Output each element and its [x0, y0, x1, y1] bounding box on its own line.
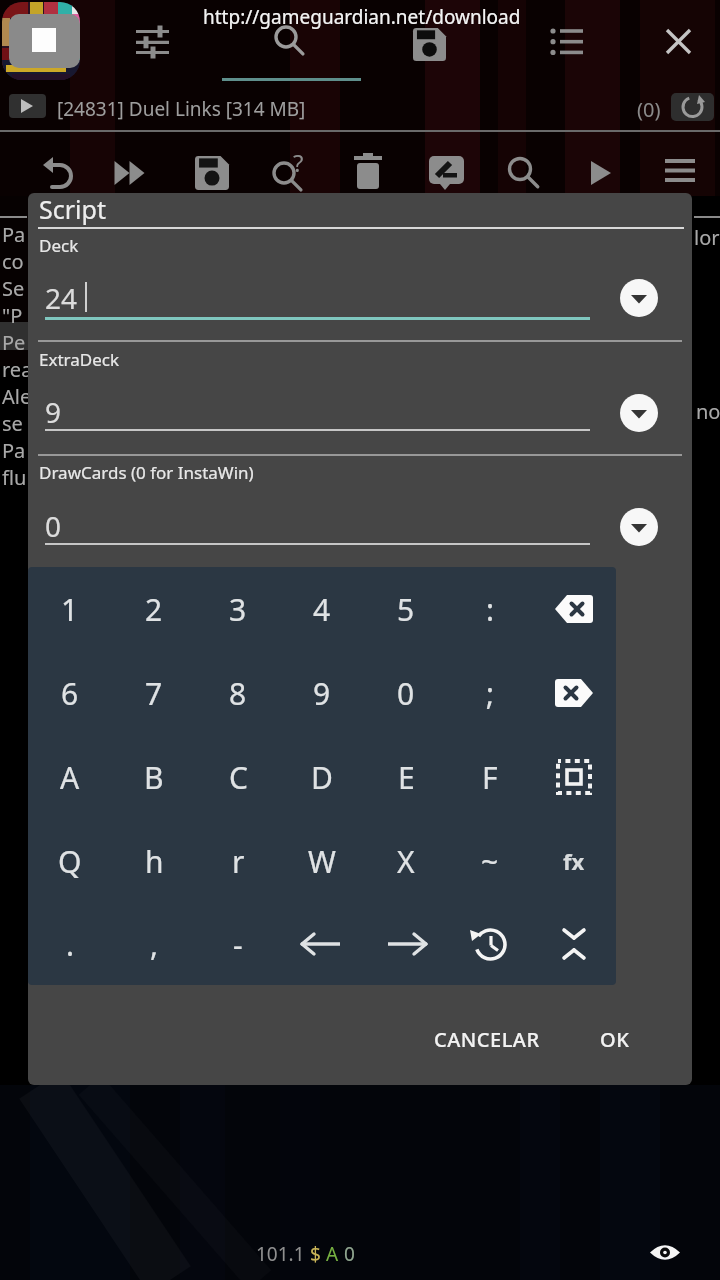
staticText: 101.1	[256, 1241, 305, 1267]
button[interactable]: .	[28, 903, 112, 985]
button[interactable]: 4	[280, 567, 364, 651]
button[interactable]: F	[448, 735, 532, 819]
button[interactable]: 2	[112, 567, 196, 651]
button[interactable]	[548, 24, 586, 60]
staticText: Script	[39, 193, 106, 226]
staticText: Pa	[2, 437, 26, 464]
staticText: r	[232, 841, 245, 882]
button[interactable]: C	[196, 735, 280, 819]
staticText: OK	[600, 1026, 630, 1053]
staticText: ;	[486, 673, 495, 714]
staticText: -	[233, 924, 243, 965]
staticText: Pa	[2, 221, 26, 248]
button[interactable]: fx	[532, 819, 616, 903]
button[interactable]: D	[280, 735, 364, 819]
staticText: http://gameguardian.net/download	[203, 4, 521, 30]
staticText: [24831] Duel Links [314 MB]	[57, 96, 306, 122]
button[interactable]	[532, 651, 616, 735]
button[interactable]: 0	[364, 651, 448, 735]
staticText: E	[398, 757, 415, 798]
staticText: 4	[313, 589, 331, 630]
button[interactable]	[502, 152, 544, 194]
staticText: fx	[563, 846, 585, 876]
button[interactable]: 9	[280, 651, 364, 735]
staticText: 8	[229, 673, 247, 714]
button[interactable]: h	[112, 819, 196, 903]
button[interactable]: 7	[112, 651, 196, 735]
button[interactable]	[532, 735, 616, 819]
staticText: Pe	[2, 329, 26, 356]
button[interactable]: 3	[196, 567, 280, 651]
button[interactable]	[671, 93, 714, 121]
staticText: 0	[45, 507, 62, 545]
button[interactable]: B	[112, 735, 196, 819]
staticText: 2	[145, 589, 163, 630]
staticText: Deck	[39, 234, 79, 257]
staticText: X	[397, 841, 415, 882]
button[interactable]: ;	[448, 651, 532, 735]
button[interactable]: 5	[364, 567, 448, 651]
button[interactable]	[36, 152, 78, 194]
button[interactable]: E	[364, 735, 448, 819]
staticText: ExtraDeck	[39, 348, 120, 371]
button[interactable]	[660, 156, 700, 192]
button[interactable]	[112, 156, 156, 190]
button[interactable]	[649, 1241, 681, 1264]
button[interactable]	[584, 154, 620, 192]
staticText: (0)	[637, 96, 661, 123]
button[interactable]	[364, 903, 448, 985]
button[interactable]: 1	[28, 567, 112, 651]
staticText: 24	[45, 279, 78, 317]
staticText: DrawCards (0 for InstaWin)	[39, 461, 254, 484]
button[interactable]: ~	[448, 819, 532, 903]
button[interactable]	[411, 26, 447, 62]
staticText: A	[326, 1241, 339, 1267]
button[interactable]	[9, 94, 46, 118]
button[interactable]: r	[196, 819, 280, 903]
button[interactable]: 8	[196, 651, 280, 735]
button[interactable]	[620, 279, 658, 317]
button[interactable]	[2, 2, 80, 80]
button[interactable]: -	[196, 903, 280, 985]
staticText: 7	[145, 673, 163, 714]
staticText: .	[66, 924, 75, 965]
staticText: 5	[397, 589, 415, 630]
staticText: $	[310, 1241, 321, 1267]
button[interactable]: OK	[575, 1013, 655, 1065]
staticText: ~	[481, 841, 499, 882]
staticText: co	[2, 248, 24, 275]
staticText: 6	[61, 673, 79, 714]
button[interactable]	[662, 25, 695, 58]
staticText: h	[145, 841, 164, 882]
button[interactable]	[350, 152, 386, 194]
staticText: rea	[2, 356, 33, 383]
staticText: :	[486, 589, 495, 630]
button[interactable]: X	[364, 819, 448, 903]
button[interactable]: :	[448, 567, 532, 651]
button[interactable]	[620, 508, 658, 546]
button[interactable]	[280, 903, 364, 985]
staticText: 0	[397, 673, 415, 714]
button[interactable]	[448, 903, 532, 985]
staticText: 9	[313, 673, 331, 714]
button[interactable]: ,	[112, 903, 196, 985]
button[interactable]: 6	[28, 651, 112, 735]
button[interactable]: Q	[28, 819, 112, 903]
button[interactable]: W	[280, 819, 364, 903]
staticText: ?	[293, 146, 304, 179]
button[interactable]: A	[28, 735, 112, 819]
button[interactable]: CANCELAR	[407, 1013, 567, 1065]
staticText: Ale	[2, 383, 32, 410]
staticText: no	[696, 398, 720, 425]
button[interactable]	[428, 154, 466, 192]
staticText: se	[2, 410, 23, 437]
button[interactable]	[532, 567, 616, 651]
button[interactable]	[268, 150, 314, 196]
button[interactable]	[620, 394, 658, 432]
button[interactable]	[267, 18, 309, 60]
button[interactable]	[194, 155, 230, 191]
button[interactable]	[133, 23, 173, 61]
button[interactable]	[532, 903, 616, 985]
staticText: CANCELAR	[434, 1026, 540, 1053]
staticText: W	[308, 841, 336, 882]
